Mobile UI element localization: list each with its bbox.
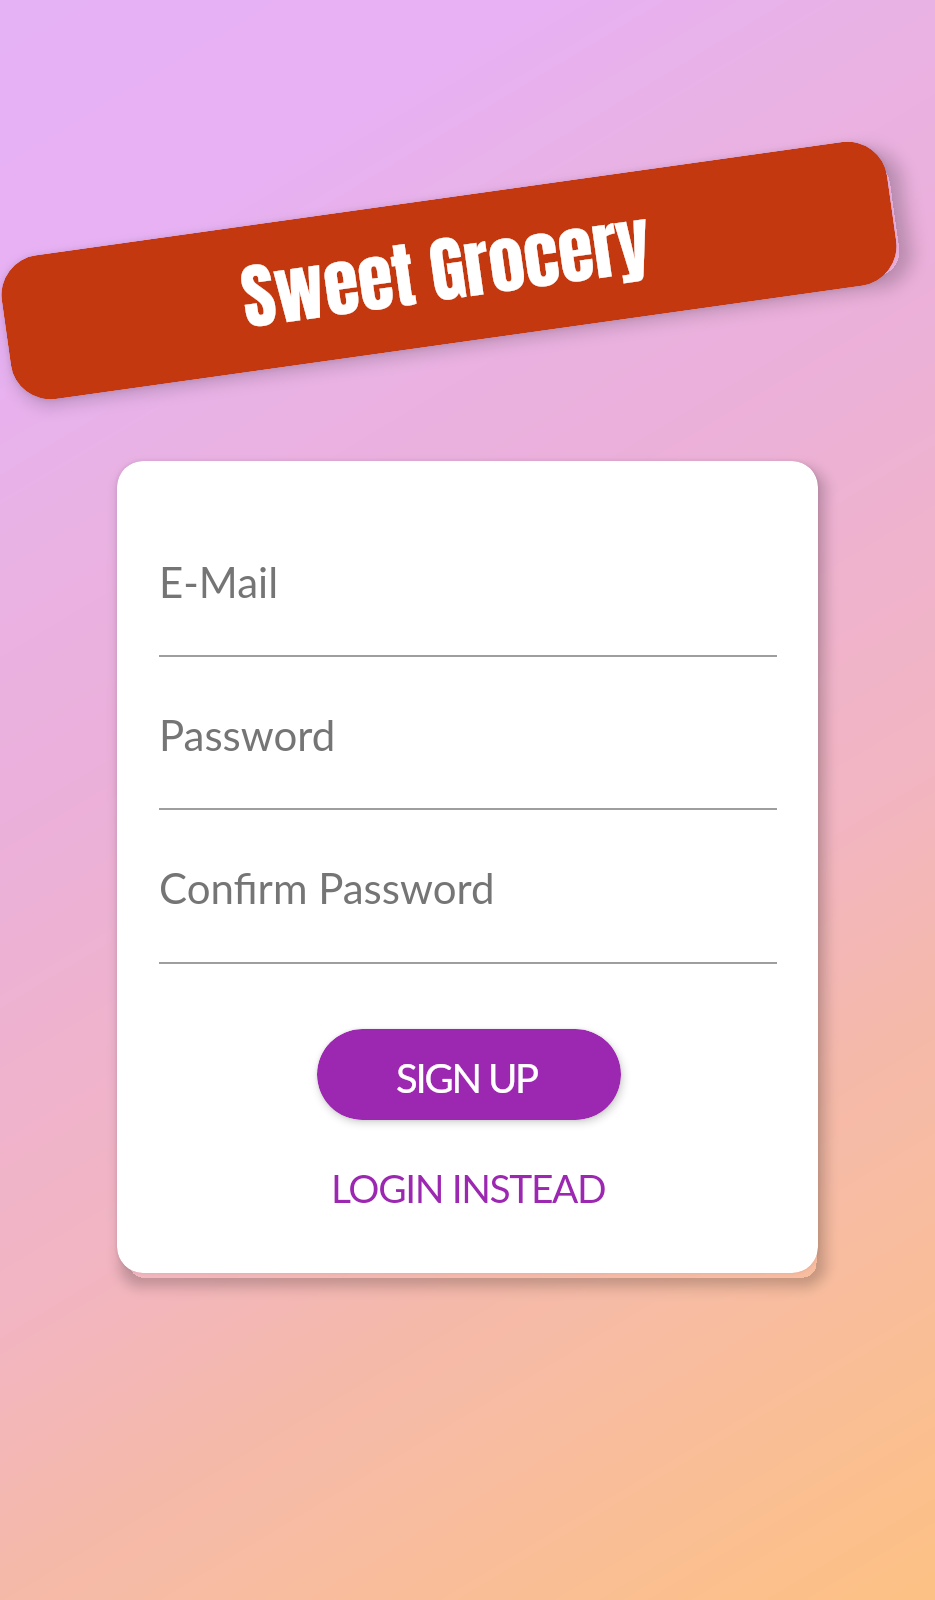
staticText: E-Mail: [159, 557, 279, 607]
button[interactable]: LOGIN INSTEAD: [277, 1149, 659, 1227]
staticText: Confirm Password: [159, 863, 495, 913]
button[interactable]: Password: [159, 670, 777, 814]
staticText: SIGN UP: [396, 1054, 537, 1102]
staticText: LOGIN INSTEAD: [331, 1165, 606, 1212]
staticText: Password: [159, 710, 336, 760]
staticText: Sweet Grocery: [234, 187, 657, 351]
button[interactable]: E-Mail: [159, 517, 777, 661]
button[interactable]: Confirm Password: [159, 823, 777, 968]
button[interactable]: SIGN UP: [317, 1029, 621, 1120]
